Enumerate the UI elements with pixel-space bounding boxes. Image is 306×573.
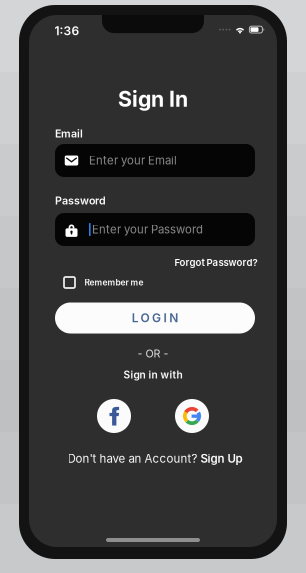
staticText: Sign In [118, 86, 188, 112]
button[interactable]: Forgot Password? [171, 255, 261, 269]
staticText: Enter your Email [89, 154, 177, 167]
staticText: Enter your Password [92, 223, 203, 236]
button[interactable]: Sign in with Facebook [97, 399, 131, 433]
button[interactable]: Remember me [64, 274, 174, 290]
staticText: 1:36 [54, 24, 79, 38]
staticText: LOGIN [132, 311, 178, 325]
staticText: Sign Up [200, 452, 242, 465]
staticText: Forgot Password? [174, 257, 257, 268]
staticText: Don't have an Account? [67, 452, 200, 465]
staticText: Email [55, 127, 83, 140]
button[interactable]: LOGIN [55, 302, 255, 333]
staticText: Password [55, 194, 106, 207]
staticText: - OR - [137, 347, 168, 360]
button[interactable]: Sign in with Google [175, 399, 209, 433]
staticText: Remember me [84, 277, 143, 288]
staticText: Sign in with [123, 369, 182, 381]
button[interactable]: Don't have an Account? [67, 450, 242, 466]
